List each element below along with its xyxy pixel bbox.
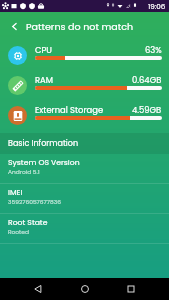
staticText: Root State — [8, 217, 48, 228]
staticText: IMEI — [8, 187, 23, 198]
staticText: 359276057677836 — [8, 198, 61, 206]
staticText: 4.59GB — [132, 104, 162, 116]
staticText: Rooted — [8, 228, 29, 236]
button[interactable]: External Storage — [0, 100, 169, 130]
button[interactable]: Recent apps — [121, 279, 141, 299]
button[interactable]: Home — [75, 279, 95, 299]
button[interactable]: Root State — [0, 214, 169, 244]
staticText: 19:06 — [148, 1, 166, 11]
button[interactable]: Navigate up — [4, 16, 24, 36]
staticText: 0.64GB — [132, 74, 162, 86]
staticText: Basic Information — [8, 138, 79, 149]
staticText: CPU — [35, 44, 52, 56]
staticText: RAM — [35, 74, 53, 86]
button[interactable]: IMEI — [0, 184, 169, 214]
button[interactable]: CPU — [0, 40, 169, 70]
staticText: Android 5.1 — [8, 168, 40, 176]
button[interactable]: Back — [28, 279, 48, 299]
staticText: External Storage — [35, 104, 104, 116]
button[interactable]: RAM — [0, 70, 169, 100]
staticText: Patterns do not match — [26, 20, 134, 33]
staticText: 63% — [145, 44, 162, 56]
staticText: System OS Version — [8, 157, 80, 168]
button[interactable]: System OS Version — [0, 154, 169, 184]
